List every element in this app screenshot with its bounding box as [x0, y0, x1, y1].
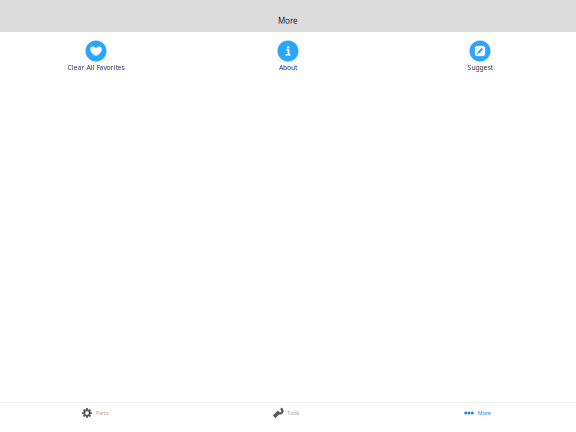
button[interactable]: Tools — [191, 403, 382, 423]
button[interactable]: Suggest — [384, 32, 576, 72]
staticText: More — [478, 409, 491, 417]
button[interactable]: Parts — [0, 403, 191, 423]
staticText: Parts — [96, 409, 109, 417]
staticText: Tools — [287, 409, 300, 417]
staticText: Suggest — [467, 63, 492, 72]
staticText: About — [279, 63, 297, 72]
staticText: More — [278, 15, 298, 26]
button[interactable]: About — [192, 32, 384, 72]
staticText: Clear All Favorites — [67, 63, 124, 72]
button[interactable]: More — [382, 403, 573, 423]
button[interactable]: Clear All Favorites — [0, 32, 192, 72]
